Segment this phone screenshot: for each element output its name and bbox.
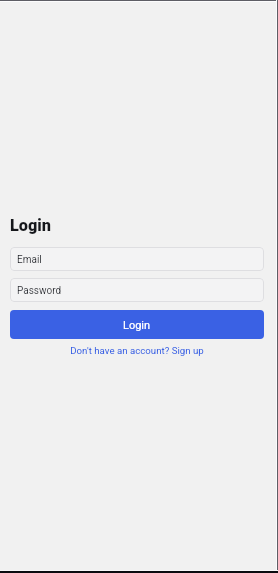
button[interactable]: Login (10, 310, 264, 339)
staticText: Don't have an account? Sign up (70, 344, 204, 357)
staticText: Login (10, 215, 52, 235)
button[interactable]: Password (10, 278, 264, 302)
button[interactable]: Email (10, 247, 264, 271)
staticText: Email (17, 253, 42, 266)
button[interactable]: Don't have an account? Sign up (10, 342, 264, 358)
staticText: Password (17, 284, 62, 297)
staticText: Login (123, 318, 151, 332)
